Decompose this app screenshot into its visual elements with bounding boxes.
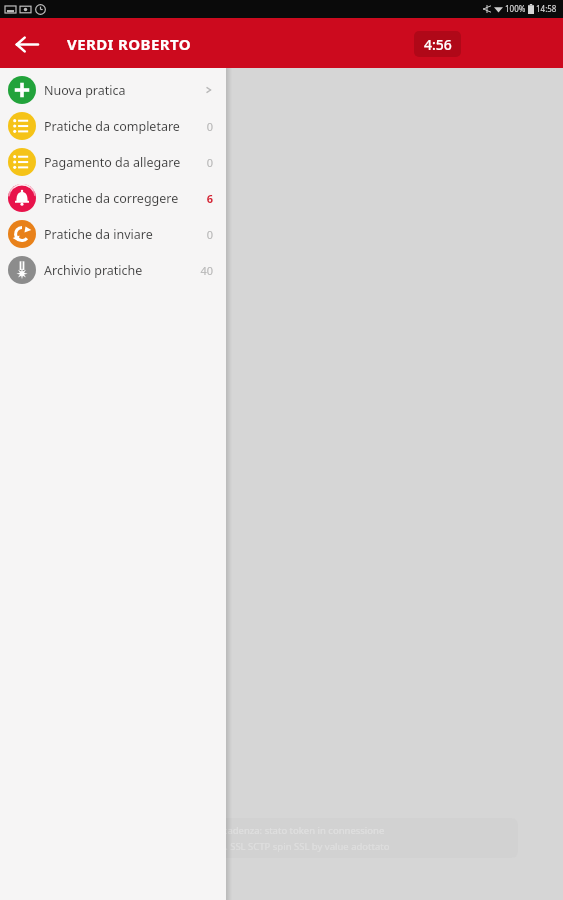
staticText: 212.168.121.1 rete per 14 sg from il sc.… xyxy=(56,840,390,853)
button[interactable]: Pagamento da allegare xyxy=(0,144,226,180)
staticText: 14:58 xyxy=(536,3,557,14)
staticText: 40 xyxy=(200,263,213,278)
staticText: VERDI ROBERTO xyxy=(67,34,192,54)
staticText: Pratiche da correggere xyxy=(44,190,206,207)
staticText: 0 xyxy=(206,155,213,170)
button[interactable]: Archivio pratiche xyxy=(0,252,226,288)
staticText: 0 xyxy=(206,119,213,134)
staticText: Pagamento da allegare xyxy=(44,154,206,171)
button[interactable]: Pratiche da inviare xyxy=(0,216,226,252)
staticText: 100% xyxy=(505,3,526,14)
staticText: Errore durante l'accesso. Timeout in sca… xyxy=(56,824,385,837)
staticText: 4:56 xyxy=(424,35,452,54)
staticText: Archivio pratiche xyxy=(44,262,200,279)
staticText: 0 xyxy=(206,227,213,242)
staticText: Pratiche da completare xyxy=(44,118,206,135)
staticText: Nuova pratica xyxy=(44,82,205,99)
button[interactable]: Nuova pratica xyxy=(0,72,226,108)
button[interactable]: Back xyxy=(6,24,46,64)
staticText: Pratiche da inviare xyxy=(44,226,206,243)
button[interactable]: 4:56 xyxy=(414,31,461,57)
staticText: 6 xyxy=(206,191,213,206)
button[interactable]: Pratiche da completare xyxy=(0,108,226,144)
button[interactable]: Pratiche da correggere xyxy=(0,180,226,216)
